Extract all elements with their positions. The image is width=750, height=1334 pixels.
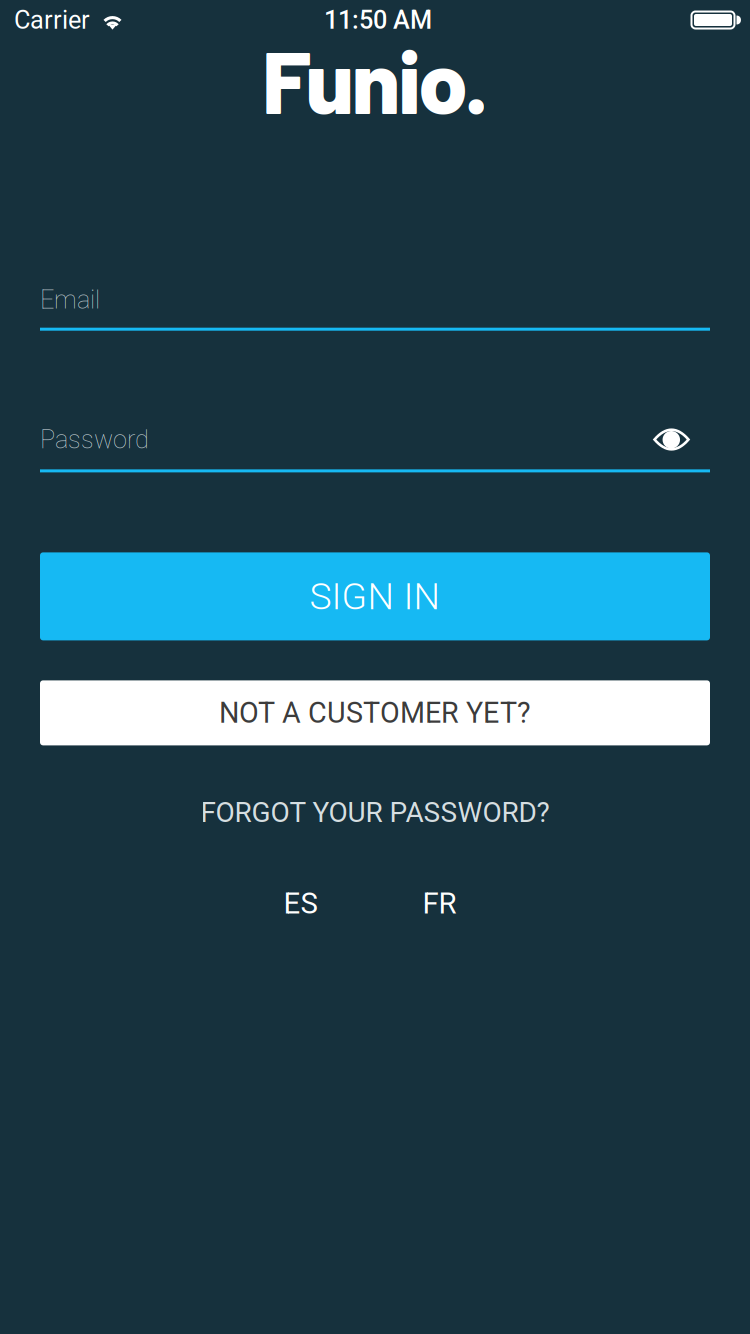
button[interactable]: FR	[387, 881, 492, 925]
button[interactable]: NOT A CUSTOMER YET?	[40, 680, 710, 745]
button[interactable]: FORGOT YOUR PASSWORD?	[40, 790, 710, 834]
staticText: SIGN IN	[309, 574, 440, 618]
staticText: ES	[283, 886, 317, 921]
button[interactable]: Show password	[653, 427, 690, 451]
staticText: Carrier	[14, 5, 90, 35]
staticText: Password	[40, 425, 149, 454]
staticText: NOT A CUSTOMER YET?	[219, 696, 531, 730]
staticText: Email	[40, 285, 100, 315]
staticText: Funio.	[262, 26, 488, 132]
button[interactable]: SIGN IN	[40, 552, 710, 640]
staticText: FR	[422, 886, 456, 921]
staticText: FORGOT YOUR PASSWORD?	[200, 796, 549, 829]
button[interactable]: ES	[248, 881, 353, 925]
staticText: 11:50 AM	[324, 5, 432, 35]
